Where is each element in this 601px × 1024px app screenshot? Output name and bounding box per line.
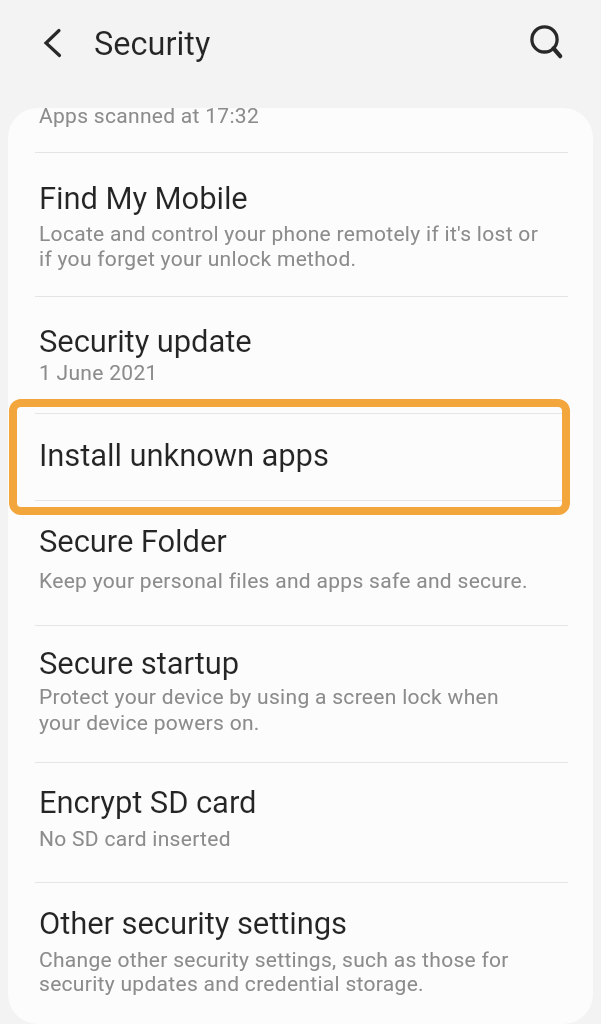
button[interactable] — [8, 152, 593, 296]
button[interactable] — [8, 108, 593, 152]
button[interactable] — [8, 296, 593, 413]
staticText: Protect your device by using a screen lo… — [39, 685, 499, 710]
button[interactable] — [8, 882, 593, 1024]
staticText: security updates and credential storage. — [39, 972, 424, 997]
staticText: Apps scanned at 17:32 — [39, 108, 260, 129]
staticText: Locate and control your phone remotely i… — [39, 222, 539, 247]
staticText: Secure startup — [39, 645, 240, 681]
staticText: Find My Mobile — [39, 180, 248, 216]
staticText: Change other security settings, such as … — [39, 948, 509, 973]
staticText: if you forget your unlock method. — [39, 247, 357, 272]
staticText: Keep your personal files and apps safe a… — [39, 569, 528, 594]
staticText: Encrypt SD card — [39, 784, 257, 820]
staticText: Secure Folder — [39, 523, 227, 559]
staticText: No SD card inserted — [39, 827, 231, 852]
staticText: Install unknown apps — [39, 437, 329, 473]
button[interactable] — [512, 7, 578, 73]
staticText: Security update — [39, 323, 252, 359]
staticText: Other security settings — [39, 905, 347, 941]
button[interactable] — [8, 624, 593, 761]
button[interactable] — [8, 761, 593, 882]
button[interactable] — [8, 413, 593, 500]
staticText: your device powers on. — [39, 711, 260, 736]
button[interactable] — [8, 500, 593, 624]
staticText: Security — [94, 25, 211, 63]
button[interactable] — [16, 8, 80, 78]
staticText: 1 June 2021 — [39, 361, 158, 386]
